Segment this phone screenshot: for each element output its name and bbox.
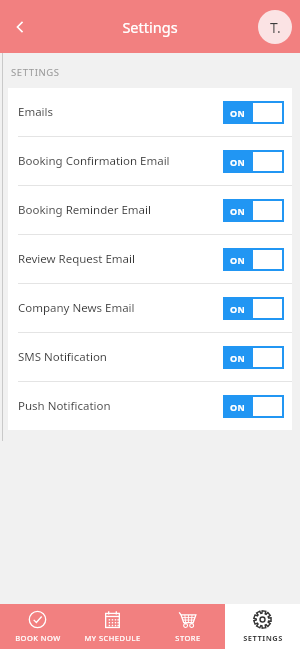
staticText: Booking Confirmation Email — [18, 153, 223, 169]
button[interactable]: Emails — [8, 88, 292, 136]
staticText: ON — [230, 156, 246, 168]
staticText: T. — [270, 18, 281, 37]
button[interactable]: Toggle on — [223, 346, 284, 369]
staticText: ON — [230, 107, 246, 119]
button[interactable]: SETTINGS — [225, 604, 300, 649]
staticText: BOOK NOW — [15, 633, 61, 643]
button[interactable]: Toggle on — [223, 248, 284, 271]
button[interactable]: MY SCHEDULE — [75, 604, 150, 649]
staticText: ON — [230, 303, 246, 315]
button[interactable]: Toggle on — [223, 199, 284, 222]
button[interactable]: Toggle on — [223, 101, 284, 124]
button[interactable]: Toggle on — [223, 297, 284, 320]
button[interactable]: Toggle on — [223, 150, 284, 173]
staticText: ON — [230, 205, 246, 217]
button[interactable]: Back — [2, 9, 38, 45]
button[interactable]: Profile — [258, 10, 292, 44]
staticText: SETTINGS — [243, 633, 283, 643]
staticText: Settings — [122, 17, 178, 37]
staticText: MY SCHEDULE — [84, 633, 141, 643]
button[interactable]: Company News Email — [8, 284, 292, 332]
staticText: Emails — [18, 104, 223, 120]
staticText: Review Request Email — [18, 251, 223, 267]
staticText: SMS Notification — [18, 349, 223, 365]
button[interactable]: STORE — [150, 604, 225, 649]
button[interactable]: Review Request Email — [8, 235, 292, 283]
staticText: ON — [230, 401, 246, 413]
staticText: STORE — [175, 633, 201, 643]
staticText: Booking Reminder Email — [18, 202, 223, 218]
button[interactable]: BOOK NOW — [0, 604, 75, 649]
button[interactable]: Push Notification — [8, 382, 292, 430]
staticText: Company News Email — [18, 300, 223, 316]
button[interactable]: Booking Reminder Email — [8, 186, 292, 234]
button[interactable]: Toggle on — [223, 395, 284, 418]
button[interactable]: SMS Notification — [8, 333, 292, 381]
staticText: Push Notification — [18, 398, 223, 414]
staticText: ON — [230, 254, 246, 266]
button[interactable]: Booking Confirmation Email — [8, 137, 292, 185]
staticText: ON — [230, 352, 246, 364]
staticText: SETTINGS — [11, 66, 60, 79]
